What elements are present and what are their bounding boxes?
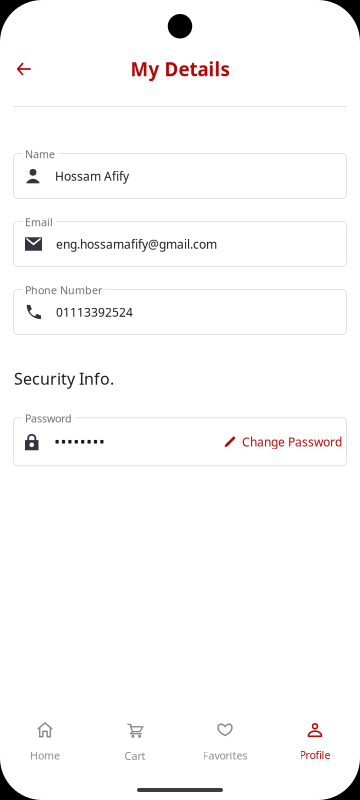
button[interactable]: Change Password bbox=[224, 434, 347, 450]
button[interactable]: Favorites bbox=[180, 717, 270, 767]
button[interactable]: Cart bbox=[90, 717, 180, 768]
staticText: Name bbox=[25, 147, 55, 161]
staticText: Phone Number bbox=[25, 283, 102, 297]
button[interactable]: Home bbox=[0, 717, 90, 767]
staticText: Favorites bbox=[202, 748, 247, 762]
staticText: eng.hossamafify@gmail.com bbox=[56, 236, 217, 252]
staticText: Home bbox=[30, 748, 60, 762]
staticText: Password bbox=[25, 411, 72, 425]
staticText: Cart bbox=[124, 749, 145, 763]
staticText: Profile bbox=[299, 748, 330, 762]
staticText: 01113392524 bbox=[56, 304, 133, 320]
staticText: Email bbox=[25, 215, 53, 229]
button[interactable]: Back bbox=[9, 54, 39, 84]
staticText: Change Password bbox=[242, 434, 342, 450]
staticText: Hossam Afify bbox=[55, 168, 129, 184]
staticText: My Details bbox=[130, 57, 229, 81]
staticText: Security Info. bbox=[14, 368, 114, 389]
button[interactable]: Profile bbox=[270, 718, 360, 767]
